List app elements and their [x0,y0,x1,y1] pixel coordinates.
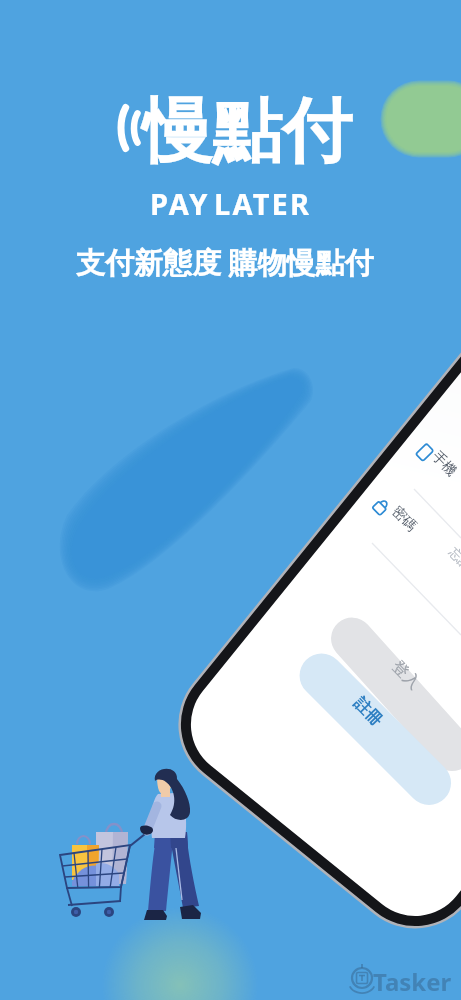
staticText: PAY [150,184,210,223]
staticText: 支付新態度 購物慢點付 [76,242,374,282]
staticText: 登入 [388,656,424,693]
staticText: 註冊 [350,693,386,730]
staticText: 手機 [428,448,460,480]
staticText: LATER [214,184,312,223]
staticText: 密碼 [388,503,420,535]
staticText: 慢點付 [142,88,352,176]
staticText: 忘記密碼 [446,544,461,592]
staticText: Tasker [373,965,452,998]
